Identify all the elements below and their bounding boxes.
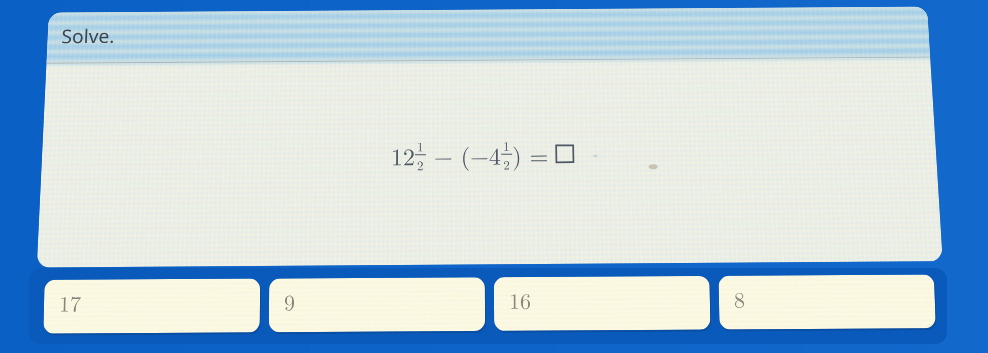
staticText: Solve. [61, 23, 115, 49]
button[interactable]: 16 [494, 276, 710, 331]
button[interactable]: 9 [269, 277, 485, 332]
other: Answer blank [556, 145, 573, 162]
staticText: 1 [417, 136, 424, 154]
staticText: 12 [391, 138, 415, 172]
staticText: 1 [503, 136, 510, 154]
staticText: 16 [509, 284, 532, 315]
staticText: ) = [512, 137, 556, 171]
staticText: 8 [733, 283, 746, 313]
button[interactable]: 17 [43, 279, 260, 334]
staticText: 2 [417, 155, 424, 173]
staticText: 17 [59, 287, 82, 318]
staticText: 2 [503, 155, 510, 173]
staticText: − (−4 [426, 138, 501, 172]
button[interactable]: 8 [718, 274, 936, 330]
staticText: 9 [284, 285, 296, 316]
